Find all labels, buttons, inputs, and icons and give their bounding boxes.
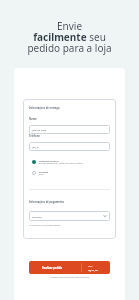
- staticText: finalizar pedido: [42, 266, 81, 270]
- button[interactable]: finalizar pedido: [29, 261, 110, 274]
- staticText: total: [88, 265, 93, 268]
- button[interactable]: Dinheiro: [29, 211, 110, 221]
- staticText: Dinheiro: [32, 215, 42, 218]
- staticText: * Pagamento na entrega/retirada: [29, 224, 61, 227]
- staticText: Nome: [29, 117, 37, 121]
- staticText: Retirada no local: [39, 159, 59, 162]
- staticText: Informações de entrega: [29, 106, 60, 110]
- staticText: R$ 21,50: [88, 268, 98, 271]
- staticText: Informações de pagamento: [29, 200, 65, 204]
- button[interactable]: (91) 9: [29, 142, 110, 151]
- staticText: Telefone: [29, 134, 40, 138]
- button[interactable]: José da Silva: [29, 125, 110, 134]
- staticText: local: [39, 173, 44, 176]
- button[interactable]: Entrega: [29, 170, 110, 176]
- staticText: José da Silva: [32, 128, 47, 131]
- button[interactable]: Retirada no local: [29, 159, 110, 165]
- staticText: O pedido será confirmado pelo WhatsApp: [0, 276, 139, 279]
- staticText: Envie facilmente seu pedido para a loja: [0, 19, 139, 55]
- staticText: Rua Gel. Pfertosa 101, Salão Cor é Corre…: [39, 162, 83, 165]
- staticText: Entrega: [39, 170, 49, 173]
- staticText: (91) 9: [32, 145, 39, 148]
